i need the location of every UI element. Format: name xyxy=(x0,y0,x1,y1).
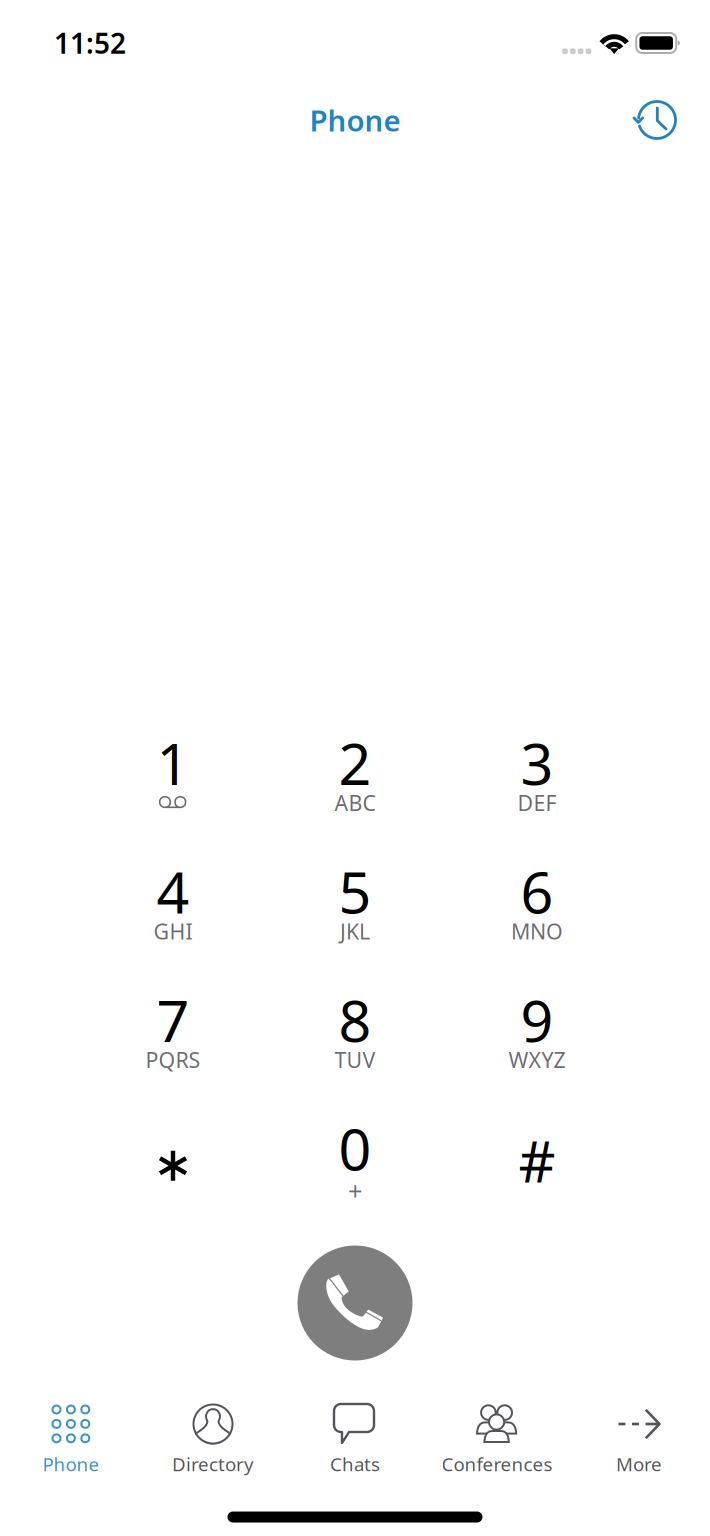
staticText: 3 xyxy=(520,725,553,801)
staticText: 4 xyxy=(156,853,189,929)
button[interactable]: 3 xyxy=(446,741,628,819)
staticText: 8 xyxy=(338,982,371,1058)
button[interactable]: 9 xyxy=(446,998,628,1076)
button[interactable]: 5 xyxy=(264,870,446,948)
button[interactable]: 2 xyxy=(264,741,446,819)
staticText: 11:52 xyxy=(54,24,126,62)
button[interactable]: Recents xyxy=(622,87,688,153)
button[interactable]: Call xyxy=(293,1241,417,1365)
staticText: 0 xyxy=(338,1110,371,1186)
button[interactable]: # xyxy=(446,1127,628,1205)
button[interactable] xyxy=(82,1127,264,1205)
staticText: MNO xyxy=(511,917,563,945)
staticText: JKL xyxy=(340,917,370,945)
staticText: Chats xyxy=(330,1452,380,1476)
staticText: 6 xyxy=(520,853,553,929)
staticText: 7 xyxy=(156,982,189,1058)
staticText: Phone xyxy=(309,100,400,139)
button[interactable]: Directory xyxy=(142,1399,284,1477)
staticText: 5 xyxy=(338,853,371,929)
staticText: GHI xyxy=(153,917,192,945)
staticText: 1 xyxy=(156,725,189,801)
button[interactable]: 8 xyxy=(264,998,446,1076)
button[interactable]: Phone xyxy=(0,1399,142,1477)
staticText: TUV xyxy=(334,1046,375,1074)
staticText: ABC xyxy=(334,789,375,817)
button[interactable]: 0 xyxy=(264,1127,446,1205)
button[interactable]: 1 xyxy=(82,741,264,819)
button[interactable]: Conferences xyxy=(426,1399,568,1477)
button[interactable]: 4 xyxy=(82,870,264,948)
staticText: DEF xyxy=(517,789,556,817)
staticText: + xyxy=(348,1174,362,1207)
staticText: More xyxy=(616,1452,662,1476)
staticText: Phone xyxy=(42,1452,99,1476)
staticText: Directory xyxy=(172,1452,254,1476)
staticText: PQRS xyxy=(145,1046,200,1074)
button[interactable]: More xyxy=(568,1399,710,1477)
button[interactable]: 6 xyxy=(446,870,628,948)
staticText: 2 xyxy=(338,725,371,801)
staticText: WXYZ xyxy=(508,1046,565,1074)
staticText: 9 xyxy=(520,982,553,1058)
button[interactable]: Chats xyxy=(284,1399,426,1477)
staticText: Conferences xyxy=(441,1452,552,1476)
staticText: # xyxy=(518,1122,555,1198)
button[interactable]: 7 xyxy=(82,998,264,1076)
